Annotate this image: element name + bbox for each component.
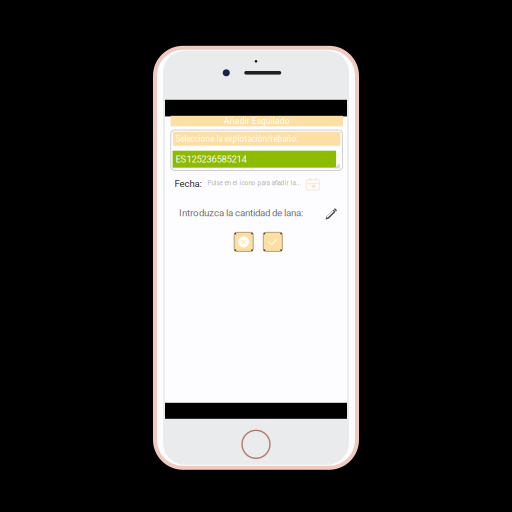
staticText: Fecha:	[174, 178, 201, 189]
staticText: ES125236585214	[176, 154, 247, 165]
button[interactable]: Aceptar	[263, 232, 282, 251]
button[interactable]: ES125236585214	[173, 151, 336, 168]
button[interactable]: Editar cantidad de lana	[325, 208, 338, 221]
button[interactable]: Seleccionar fecha	[306, 178, 319, 190]
staticText: Pulse en el icono para añadir la...	[208, 179, 302, 187]
staticText: Introduzca la cantidad de lana:	[179, 207, 303, 219]
button[interactable]: Cancelar	[234, 232, 253, 251]
staticText: Seleccione la explotación/rebaño:	[176, 134, 299, 144]
staticText: Añadir Esquilado	[224, 116, 290, 126]
button[interactable]: Añadir Esquilado	[171, 116, 343, 126]
